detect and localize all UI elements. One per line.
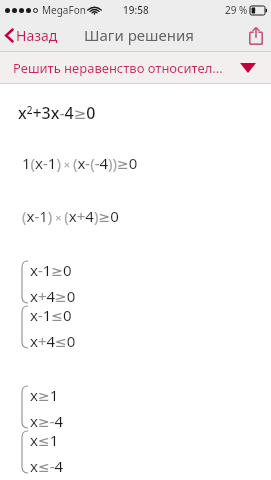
button[interactable]: Поделиться bbox=[241, 23, 271, 48]
staticText: 29 % bbox=[225, 3, 248, 17]
button[interactable]: Решить неравенство относител... bbox=[0, 52, 271, 83]
staticText: x≤1 bbox=[30, 430, 59, 450]
staticText: x+4≥0 bbox=[30, 286, 76, 306]
staticText: x-1≤0 bbox=[30, 305, 72, 325]
staticText: 1(x-1) × (x-(-4))≥0 bbox=[22, 153, 138, 173]
staticText: x≥1 bbox=[30, 385, 59, 405]
staticText: x≤-4 bbox=[30, 456, 64, 476]
staticText: x-1≥0 bbox=[30, 260, 72, 280]
button[interactable]: Назад bbox=[0, 22, 64, 49]
staticText: Шаги решения bbox=[84, 25, 194, 45]
staticText: 19:58 bbox=[123, 3, 149, 17]
staticText: x2+3x-4≥0 bbox=[18, 102, 96, 124]
staticText: MegaFon bbox=[42, 3, 86, 17]
staticText: Решить неравенство относител... bbox=[13, 59, 223, 77]
staticText: x≥-4 bbox=[30, 411, 64, 431]
staticText: x+4≤0 bbox=[30, 331, 76, 351]
staticText: (x-1) × (x+4)≥0 bbox=[22, 206, 119, 226]
staticText: Назад bbox=[16, 26, 58, 45]
